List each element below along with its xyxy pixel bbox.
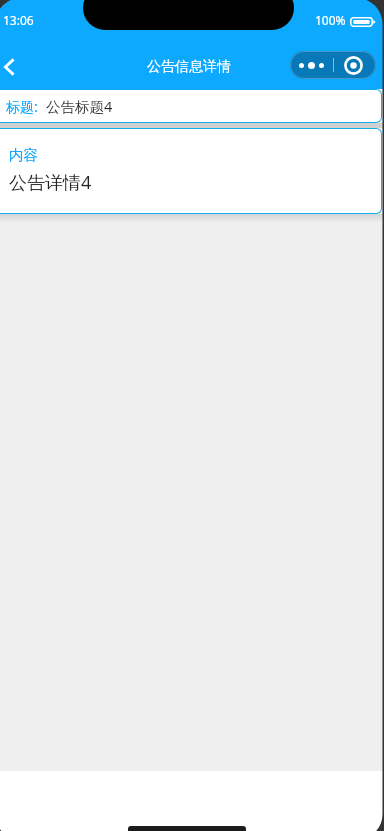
staticText: 100%: [315, 12, 346, 28]
staticText: 内容: [9, 146, 38, 164]
button[interactable]: Back: [0, 41, 44, 89]
staticText: 公告详情4: [9, 170, 92, 195]
staticText: 13:06: [3, 12, 34, 28]
staticText: 公告信息详情: [147, 58, 231, 76]
button[interactable]: More: [290, 51, 333, 79]
staticText: 公告标题4: [46, 96, 113, 116]
button[interactable]: Close: [333, 51, 376, 79]
staticText: 标题:: [6, 97, 38, 116]
